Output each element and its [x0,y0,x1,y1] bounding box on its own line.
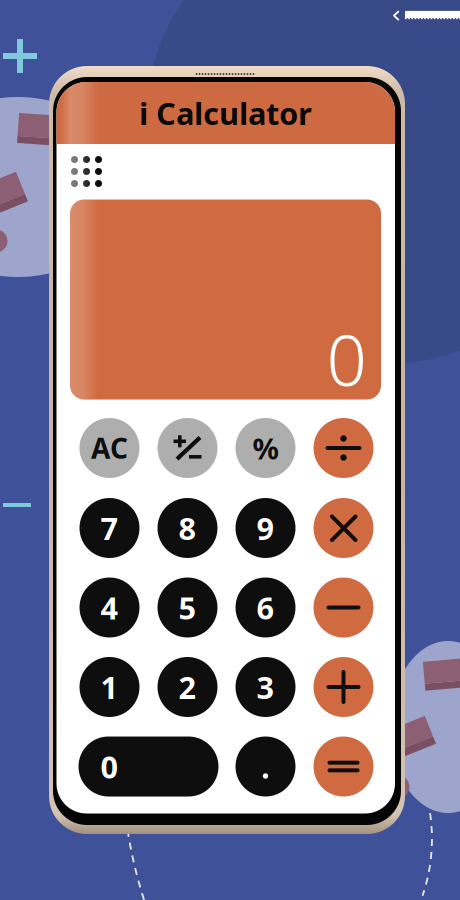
button[interactable]: 2 [157,657,217,717]
button[interactable]: Back [388,8,406,24]
button[interactable]: AC [79,418,139,478]
button[interactable]: Plus or minus [157,418,217,478]
button[interactable]: Multiply [313,498,373,558]
staticText: 1 [100,667,118,707]
button[interactable]: 5 [157,577,217,637]
staticText: 8 [178,508,196,548]
button[interactable]: Add [313,657,373,717]
staticText: % [252,428,278,467]
button[interactable]: 9 [235,498,295,558]
button[interactable]: 0 [78,736,218,796]
staticText: 9 [256,508,274,548]
staticText: AC [91,429,128,467]
staticText: 7 [100,508,118,548]
button[interactable]: % [235,418,295,478]
button[interactable]: 4 [79,577,139,637]
staticText: 6 [256,587,274,628]
button[interactable]: Menu [61,146,112,197]
button[interactable]: 6 [235,577,295,637]
button[interactable]: i Calculator [56,82,395,144]
staticText: 0 [100,746,118,787]
staticText: 5 [178,587,196,628]
button[interactable]: 7 [79,498,139,558]
staticText: i Calculator [139,93,312,133]
button[interactable]: Decimal point [235,736,295,796]
staticText: 4 [100,587,118,628]
button[interactable]: Divide [313,418,373,478]
button[interactable]: Equals [313,736,373,796]
button[interactable]: 3 [235,657,295,717]
button[interactable]: Subtract [313,577,373,637]
staticText: 0 [326,312,366,405]
button[interactable]: 8 [157,498,217,558]
staticText: 2 [178,667,196,707]
button[interactable]: 1 [79,657,139,717]
staticText: 3 [256,667,274,707]
